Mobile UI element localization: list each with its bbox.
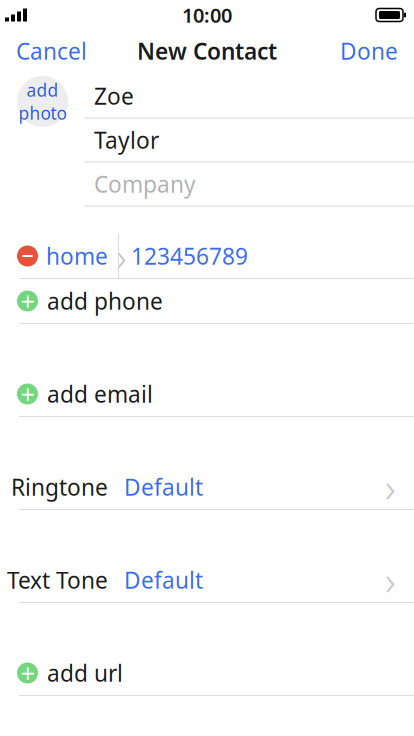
staticText: 123456789 (131, 241, 248, 271)
button[interactable]: Text Tone (0, 558, 414, 602)
button[interactable]: Ringtone (0, 465, 414, 509)
button[interactable]: + (0, 372, 414, 416)
staticText: › (385, 460, 396, 513)
staticText: Company (94, 169, 196, 199)
staticText: home (46, 241, 108, 271)
staticText: + (20, 656, 34, 690)
button[interactable]: + (0, 651, 414, 695)
staticText: add url (47, 658, 123, 688)
button[interactable]: add (17, 76, 68, 127)
staticText: add email (47, 379, 153, 409)
staticText: Cancel (16, 36, 87, 66)
staticText: Ringtone (11, 472, 108, 502)
staticText: Taylor (94, 125, 159, 155)
staticText: add phone (47, 286, 163, 316)
staticText: Done (340, 36, 398, 66)
staticText: › (116, 229, 127, 282)
button[interactable]: + (0, 279, 414, 323)
staticText: Zoe (94, 81, 134, 111)
button[interactable]: Done (324, 29, 414, 73)
staticText: › (385, 553, 396, 606)
staticText: Text Tone (7, 565, 108, 595)
button[interactable]: home (0, 234, 414, 278)
staticText: add (26, 78, 58, 101)
staticText: photo (18, 101, 66, 124)
staticText: Default (124, 565, 203, 595)
staticText: New Contact (137, 36, 277, 66)
staticText: Default (124, 472, 203, 502)
staticText: + (20, 284, 34, 318)
staticText: + (20, 377, 34, 411)
button[interactable]: Cancel (0, 29, 103, 73)
staticText: 10:00 (182, 2, 232, 28)
